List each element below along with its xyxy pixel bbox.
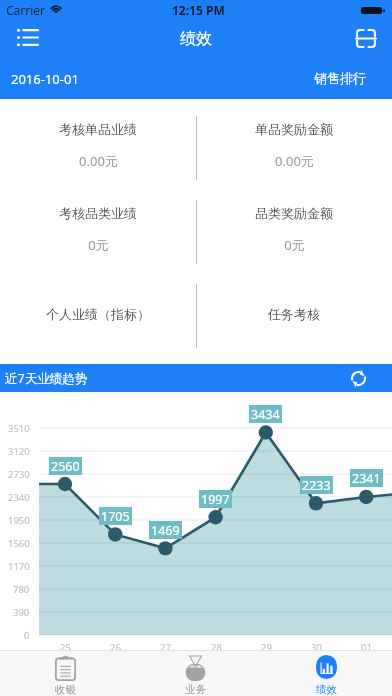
staticText: 单品奖励金额 (255, 121, 333, 137)
button[interactable]: 任务考核 (196, 274, 392, 358)
button[interactable]: 销售排行 (302, 62, 392, 94)
staticText: 2233 (302, 477, 331, 494)
button[interactable]: 绩效 (261, 651, 392, 696)
staticText: 0元 (284, 236, 305, 254)
button[interactable]: 个人业绩（指标） (0, 274, 196, 358)
staticText: 12:15 PM (172, 2, 225, 18)
staticText: Carrier (6, 2, 46, 18)
staticText: 2341 (352, 470, 381, 487)
staticText: 绩效 (180, 29, 212, 49)
staticText: 2016-10-01 (11, 70, 79, 88)
staticText: 30 (311, 641, 322, 654)
staticText: 2730 (8, 468, 30, 481)
button[interactable]: 2016-10-01 (0, 61, 91, 95)
staticText: 考核单品业绩 (59, 121, 137, 137)
staticText: 26 (110, 641, 121, 654)
staticText: 考核品类业绩 (59, 205, 137, 221)
staticText: 销售排行 (314, 70, 366, 86)
staticText: 1170 (8, 560, 30, 573)
button[interactable]: Refresh (342, 364, 375, 392)
staticText: 3510 (8, 422, 30, 435)
staticText: 1469 (151, 522, 180, 539)
button[interactable]: Scan (348, 20, 384, 57)
staticText: 0元 (88, 236, 109, 254)
staticText: 0.00元 (275, 152, 314, 170)
staticText: 1560 (8, 537, 30, 550)
staticText: 3434 (251, 406, 280, 423)
button[interactable]: Menu (5, 20, 49, 55)
button[interactable]: 考核单品业绩 (0, 106, 196, 190)
staticText: 3120 (8, 445, 30, 458)
staticText: 390 (13, 606, 30, 619)
button[interactable]: 单品奖励金额 (196, 106, 392, 190)
button[interactable]: 考核品类业绩 (0, 190, 196, 274)
staticText: 2340 (8, 491, 30, 504)
staticText: 业务 (185, 683, 206, 696)
staticText: 近7天业绩趋势 (5, 370, 88, 387)
staticText: 绩效 (316, 683, 337, 696)
staticText: 2560 (51, 458, 80, 475)
staticText: 收银 (55, 683, 76, 696)
staticText: 品类奖励金额 (255, 205, 333, 221)
staticText: 780 (13, 583, 30, 596)
staticText: 28 (211, 641, 222, 654)
staticText: 1950 (8, 514, 30, 527)
staticText: 0.00元 (79, 152, 118, 170)
staticText: 个人业绩（指标） (46, 306, 150, 322)
staticText: 29 (261, 641, 272, 654)
button[interactable]: 品类奖励金额 (196, 190, 392, 274)
button[interactable]: 收银 (0, 651, 130, 696)
staticText: 01 (361, 641, 372, 654)
staticText: 1705 (101, 508, 130, 525)
staticText: 25 (60, 641, 71, 654)
staticText: 1997 (201, 491, 230, 508)
staticText: 27 (160, 641, 171, 654)
button[interactable]: 业务 (130, 651, 261, 696)
staticText: 任务考核 (268, 306, 320, 322)
staticText: 0 (24, 629, 30, 642)
